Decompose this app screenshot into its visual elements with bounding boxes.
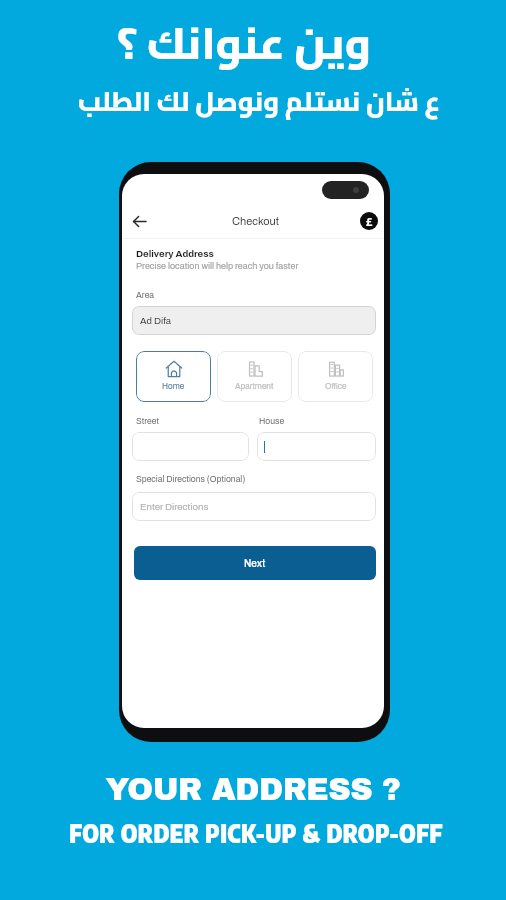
button[interactable]	[257, 432, 376, 461]
button[interactable]: Apartment	[217, 351, 292, 402]
staticText: Ad Difa	[140, 316, 172, 326]
staticText: FOR ORDER PICK-UP & DROP-OFF	[3, 818, 506, 848]
staticText: Special Directions (Optional)	[136, 474, 246, 483]
staticText: Next	[244, 558, 266, 569]
staticText: ع شان نستلم ونوصل لك الطلب	[6, 76, 506, 126]
button[interactable]: Back	[128, 210, 150, 232]
staticText: Street	[136, 416, 160, 425]
button[interactable]: Office	[298, 351, 373, 402]
staticText: Enter Directions	[140, 502, 209, 512]
staticText: Home	[162, 382, 185, 391]
button[interactable]	[132, 432, 249, 461]
staticText: £	[366, 214, 373, 229]
button[interactable]: Enter Directions	[132, 492, 376, 521]
staticText: Office	[325, 382, 347, 391]
button[interactable]: Next	[134, 546, 376, 580]
staticText: Precise location will help reach you fas…	[136, 261, 299, 271]
staticText: وين عنوانك ؟	[0, 2, 497, 84]
staticText: YOUR ADDRESS ?	[0, 773, 506, 807]
button[interactable]: Home	[136, 351, 211, 402]
staticText: Area	[136, 290, 155, 299]
staticText: Delivery Address	[136, 249, 214, 259]
staticText: Checkout	[232, 215, 279, 227]
button[interactable]: Ad Difa	[132, 306, 376, 335]
button[interactable]: Currency	[360, 212, 378, 230]
staticText: House	[259, 416, 285, 425]
staticText: Apartment	[235, 382, 274, 391]
